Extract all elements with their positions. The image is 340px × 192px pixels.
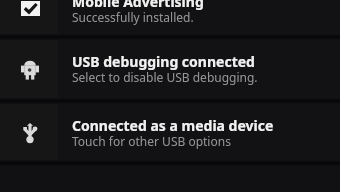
staticText: Mobile Advertising [72, 0, 204, 11]
other: USB connection [23, 123, 37, 143]
button[interactable]: USB debugging [0, 38, 340, 102]
other: Installed [21, 1, 40, 16]
button[interactable]: Installed [0, 0, 340, 38]
button[interactable]: USB connection [0, 102, 340, 164]
staticText: USB debugging connected [72, 52, 255, 71]
staticText: Successfully installed. [72, 9, 194, 25]
staticText: Connected as a media device [72, 116, 274, 135]
other: USB debugging [21, 60, 39, 80]
staticText: Select to disable USB debugging. [72, 69, 258, 85]
staticText: Touch for other USB options [72, 133, 231, 149]
